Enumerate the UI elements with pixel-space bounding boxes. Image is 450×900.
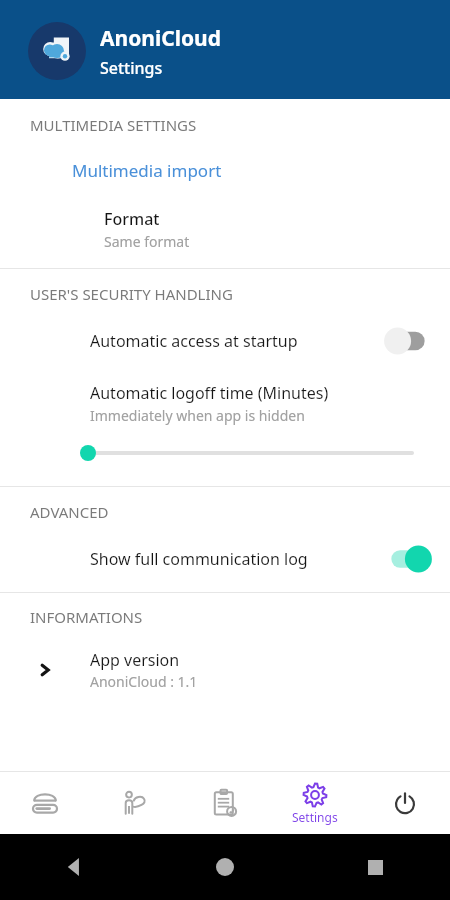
staticText: App version — [90, 649, 180, 671]
staticText: Immediately when app is hidden — [90, 406, 305, 425]
button[interactable]: Automatic logoff time (Minutes) — [0, 382, 450, 425]
button[interactable]: Multimedia import — [0, 157, 450, 184]
staticText: Show full communication log — [90, 548, 382, 570]
staticText: Settings — [292, 809, 338, 825]
button[interactable]: Back — [60, 852, 90, 882]
staticText: MULTIMEDIA SETTINGS — [30, 115, 197, 135]
staticText: Format — [104, 208, 160, 230]
staticText: Multimedia import — [72, 159, 222, 182]
staticText: AnoniCloud — [100, 24, 222, 53]
button[interactable]: Storage — [0, 772, 90, 834]
button[interactable] — [382, 544, 434, 574]
staticText: Automatic access at startup — [90, 330, 382, 352]
button[interactable]: Users — [90, 772, 180, 834]
button[interactable]: Tasks — [180, 772, 270, 834]
staticText: AnoniCloud : 1.1 — [90, 672, 198, 691]
button[interactable]: Home — [210, 852, 240, 882]
button[interactable] — [382, 326, 434, 356]
button[interactable]: Format — [0, 208, 450, 251]
staticText: Same format — [104, 232, 190, 251]
staticText: ADVANCED — [30, 502, 109, 522]
button[interactable]: Show full communication log — [0, 544, 450, 574]
staticText: Automatic logoff time (Minutes) — [90, 382, 329, 404]
button[interactable]: Recents — [360, 852, 390, 882]
other: Open — [35, 660, 55, 680]
button[interactable]: Settings — [270, 772, 360, 834]
button[interactable]: Power — [360, 772, 450, 834]
button[interactable]: Logoff time slider — [0, 443, 450, 463]
staticText: USER'S SECURITY HANDLING — [30, 284, 233, 304]
button[interactable]: Open — [0, 649, 450, 691]
staticText: Settings — [100, 57, 163, 79]
button[interactable]: Automatic access at startup — [0, 326, 450, 356]
staticText: INFORMATIONS — [30, 607, 143, 627]
